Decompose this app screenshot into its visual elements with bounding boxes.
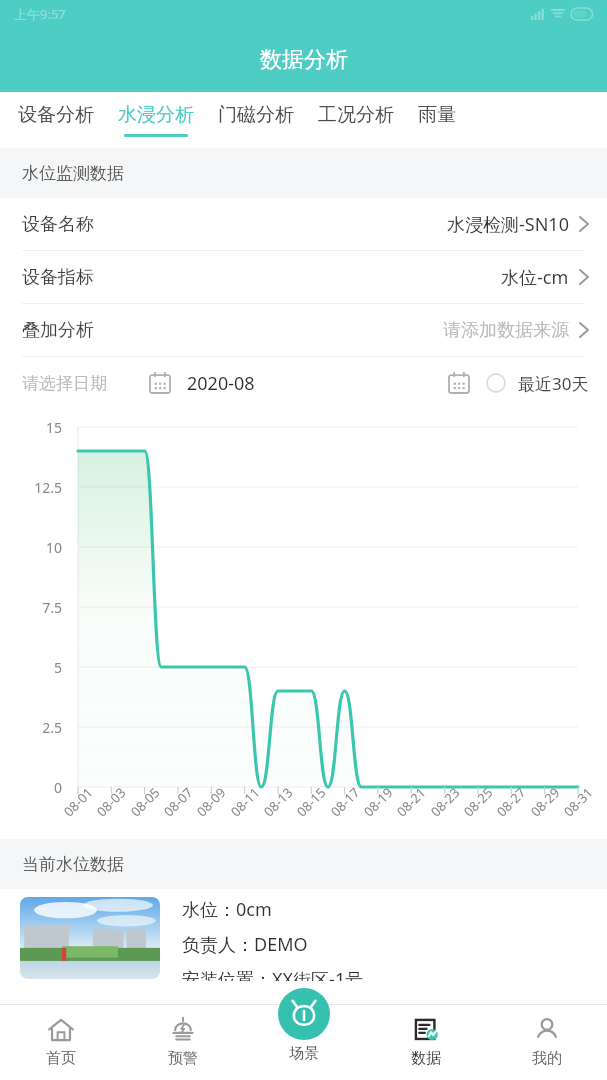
staticText: 设备指标 xyxy=(22,266,94,289)
staticText: 08-07 xyxy=(160,784,196,820)
button[interactable]: 首页 xyxy=(0,1004,122,1080)
staticText: 请选择日期 xyxy=(22,373,107,394)
staticText: 雨量 xyxy=(418,103,456,127)
staticText: 08-31 xyxy=(560,784,596,820)
staticText: 08-29 xyxy=(527,784,563,820)
staticText: 数据分析 xyxy=(260,46,348,74)
staticText: 水位：0cm xyxy=(182,897,272,922)
button[interactable]: 设备名称 xyxy=(0,198,607,250)
button[interactable]: 我的 xyxy=(486,1004,607,1080)
staticText: 门磁分析 xyxy=(218,103,294,127)
button[interactable]: 场景 xyxy=(278,988,330,1040)
button[interactable]: 门磁分析 xyxy=(218,92,294,148)
staticText: 08-05 xyxy=(127,784,163,820)
staticText: 08-27 xyxy=(493,784,529,820)
staticText: 工况分析 xyxy=(318,103,394,127)
button[interactable]: Select end date xyxy=(448,372,470,394)
staticText: 08-25 xyxy=(460,784,496,820)
staticText: 08-01 xyxy=(60,784,96,820)
staticText: 场景 xyxy=(289,1044,319,1063)
staticText: 2020-08 xyxy=(187,371,255,396)
staticText: 水浸检测-SN10 xyxy=(447,212,569,237)
staticText: 安装位置：XX街区-1号 xyxy=(182,967,364,981)
staticText: 设备名称 xyxy=(22,213,94,236)
staticText: 当前水位数据 xyxy=(22,854,124,875)
staticText: 08-03 xyxy=(93,784,129,820)
staticText: 我的 xyxy=(532,1049,562,1068)
staticText: 叠加分析 xyxy=(22,319,94,342)
staticText: 负责人：DEMO xyxy=(182,932,308,957)
staticText: 请添加数据来源 xyxy=(443,319,569,342)
button[interactable]: 数据 xyxy=(365,1004,486,1080)
staticText: 08-13 xyxy=(260,784,296,820)
staticText: 08-11 xyxy=(227,784,263,820)
staticText: 12.5 xyxy=(0,478,62,497)
staticText: 7.5 xyxy=(0,598,62,617)
button[interactable]: 水浸分析 xyxy=(118,92,194,148)
staticText: 08-09 xyxy=(193,784,229,820)
staticText: 设备分析 xyxy=(18,103,94,127)
staticText: 水位-cm xyxy=(501,265,569,290)
button[interactable]: 工况分析 xyxy=(318,92,394,148)
button[interactable]: 叠加分析 xyxy=(0,304,607,356)
staticText: 首页 xyxy=(46,1049,76,1068)
button[interactable]: 水位：0cm xyxy=(0,889,607,981)
staticText: 数据 xyxy=(411,1049,441,1068)
staticText: 08-21 xyxy=(393,784,429,820)
button[interactable]: Last 30 days toggle xyxy=(486,373,506,393)
button[interactable]: 设备指标 xyxy=(0,251,607,303)
staticText: 水位监测数据 xyxy=(22,163,124,184)
button[interactable]: 预警 xyxy=(122,1004,244,1080)
staticText: 08-15 xyxy=(293,784,329,820)
staticText: 15 xyxy=(0,418,62,437)
staticText: 最近30天 xyxy=(518,372,589,395)
staticText: 5 xyxy=(0,658,62,677)
staticText: 08-19 xyxy=(360,784,396,820)
button[interactable]: Select start date xyxy=(149,372,171,394)
staticText: 10 xyxy=(0,538,62,557)
button[interactable]: 设备分析 xyxy=(18,92,94,148)
staticText: 2.5 xyxy=(0,718,62,737)
staticText: 0 xyxy=(0,778,62,797)
staticText: 08-23 xyxy=(427,784,463,820)
staticText: 预警 xyxy=(168,1049,198,1068)
staticText: 08-17 xyxy=(327,784,363,820)
staticText: 上午9:57 xyxy=(14,5,66,23)
button[interactable]: 雨量 xyxy=(418,92,456,148)
staticText: 水浸分析 xyxy=(118,103,194,127)
